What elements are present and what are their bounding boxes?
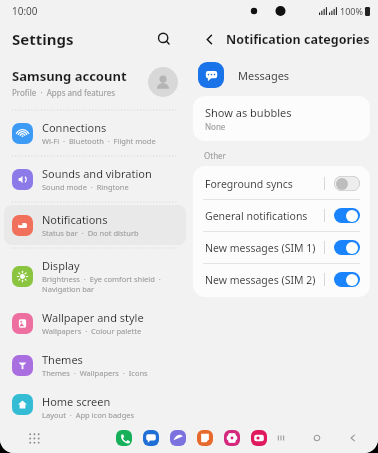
button[interactable]: Recents [272,429,290,447]
button[interactable]: On [334,240,360,255]
staticText: Display [42,258,80,273]
button[interactable]: Foreground syncs [193,166,370,199]
staticText: Sounds and vibration [42,166,152,181]
staticText: 10:00 [12,4,38,18]
staticText: Home screen [42,394,111,409]
button[interactable]: Phone [116,430,132,446]
button[interactable]: Messages [143,430,159,446]
staticText: New messages (SIM 2) [205,273,324,287]
staticText: Notification categories [226,31,370,48]
staticText: Foreground syncs [205,177,324,191]
staticText: Wi-Fi · Bluetooth · Flight mode [42,136,156,146]
button[interactable]: Search [151,26,177,52]
button[interactable]: General notifications [193,200,370,231]
button[interactable]: New messages (SIM 1) [193,232,370,263]
button[interactable]: On [334,272,360,287]
staticText: Settings [12,29,74,49]
button[interactable]: Wallpaper and style [4,303,186,343]
button[interactable]: Notifications [4,205,186,245]
staticText: Wallpaper and style [42,310,144,325]
staticText: Connections [42,120,107,135]
staticText: Themes [42,352,83,367]
button[interactable]: Back [344,429,362,447]
staticText: Sound mode · Ringtone [42,182,129,192]
button[interactable]: Camera [251,430,267,446]
staticText: Profile · Apps and features [12,87,116,98]
button[interactable]: On [334,208,360,223]
button[interactable]: Apps [24,428,44,448]
staticText: Other [204,150,226,161]
staticText: Show as bubbles [205,105,292,120]
button[interactable]: Home [308,429,326,447]
button[interactable]: Display [4,251,186,301]
button[interactable]: Off [334,176,360,191]
button[interactable]: Samsung account [0,56,190,108]
button[interactable]: Back [198,28,220,50]
staticText: Themes · Wallpapers · Icons [42,368,148,378]
staticText: Wallpapers · Colour palette [42,326,142,336]
staticText: New messages (SIM 1) [205,241,324,255]
button[interactable]: Sounds and vibration [4,159,186,199]
button[interactable]: Connections [4,113,186,153]
button[interactable]: Home screen [4,387,186,422]
button[interactable]: Show as bubbles [193,96,370,141]
button[interactable]: Gallery [224,430,240,446]
button[interactable]: Themes [4,345,186,385]
staticText: None [205,121,226,132]
staticText: Samsung account [12,67,127,85]
staticText: General notifications [205,209,324,223]
staticText: Messages [238,68,290,83]
button[interactable]: Notes [197,430,213,446]
button[interactable]: Internet [170,430,186,446]
staticText: Layout · App icon badges [42,410,135,415]
staticText: Status bar · Do not disturb [42,228,139,238]
staticText: Brightness · Eye comfort shield · Naviga… [42,274,161,294]
button[interactable]: New messages (SIM 2) [193,264,370,297]
staticText: Notifications [42,212,108,227]
staticText: 100% [340,5,363,17]
